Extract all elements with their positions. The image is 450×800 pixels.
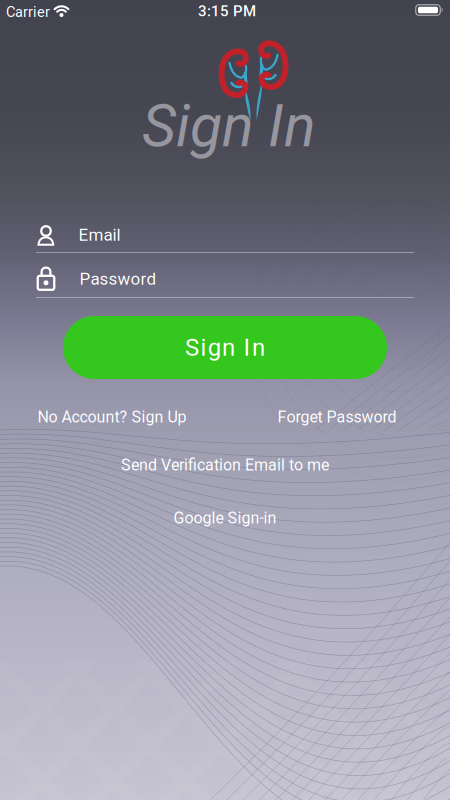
- staticText: Sign In: [142, 91, 316, 160]
- staticText: Carrier: [6, 3, 50, 20]
- staticText: Sign In: [185, 333, 265, 361]
- staticText: No Account? Sign Up: [37, 408, 186, 426]
- button[interactable]: Email: [0, 219, 450, 253]
- staticText: Google Sign-in: [173, 509, 276, 527]
- staticText: Forget Password: [277, 408, 396, 426]
- button[interactable]: Google Sign-in: [173, 509, 276, 527]
- button[interactable]: Password: [0, 263, 450, 298]
- button[interactable]: Send Verification Email to me: [121, 456, 329, 474]
- staticText: Email: [78, 225, 120, 245]
- button[interactable]: Sign In: [63, 316, 387, 379]
- button[interactable]: No Account? Sign Up: [37, 408, 186, 426]
- staticText: Password: [79, 269, 156, 289]
- button[interactable]: Forget Password: [277, 408, 396, 426]
- staticText: Send Verification Email to me: [121, 456, 329, 474]
- staticText: 3:15 PM: [198, 2, 256, 20]
